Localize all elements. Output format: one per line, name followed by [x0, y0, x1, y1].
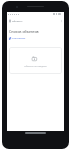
- staticText: Объекты: [12, 19, 23, 22]
- staticText: Список объектов: [9, 29, 39, 34]
- button[interactable]: Сортировка: [9, 37, 26, 40]
- button[interactable]: Объекты не найдены: [9, 47, 62, 74]
- staticText: Сортировка: [12, 37, 26, 40]
- button[interactable]: More options: [59, 18, 64, 23]
- staticText: Объекты не найдены: [24, 65, 47, 68]
- button[interactable]: Open navigation menu: [7, 18, 12, 23]
